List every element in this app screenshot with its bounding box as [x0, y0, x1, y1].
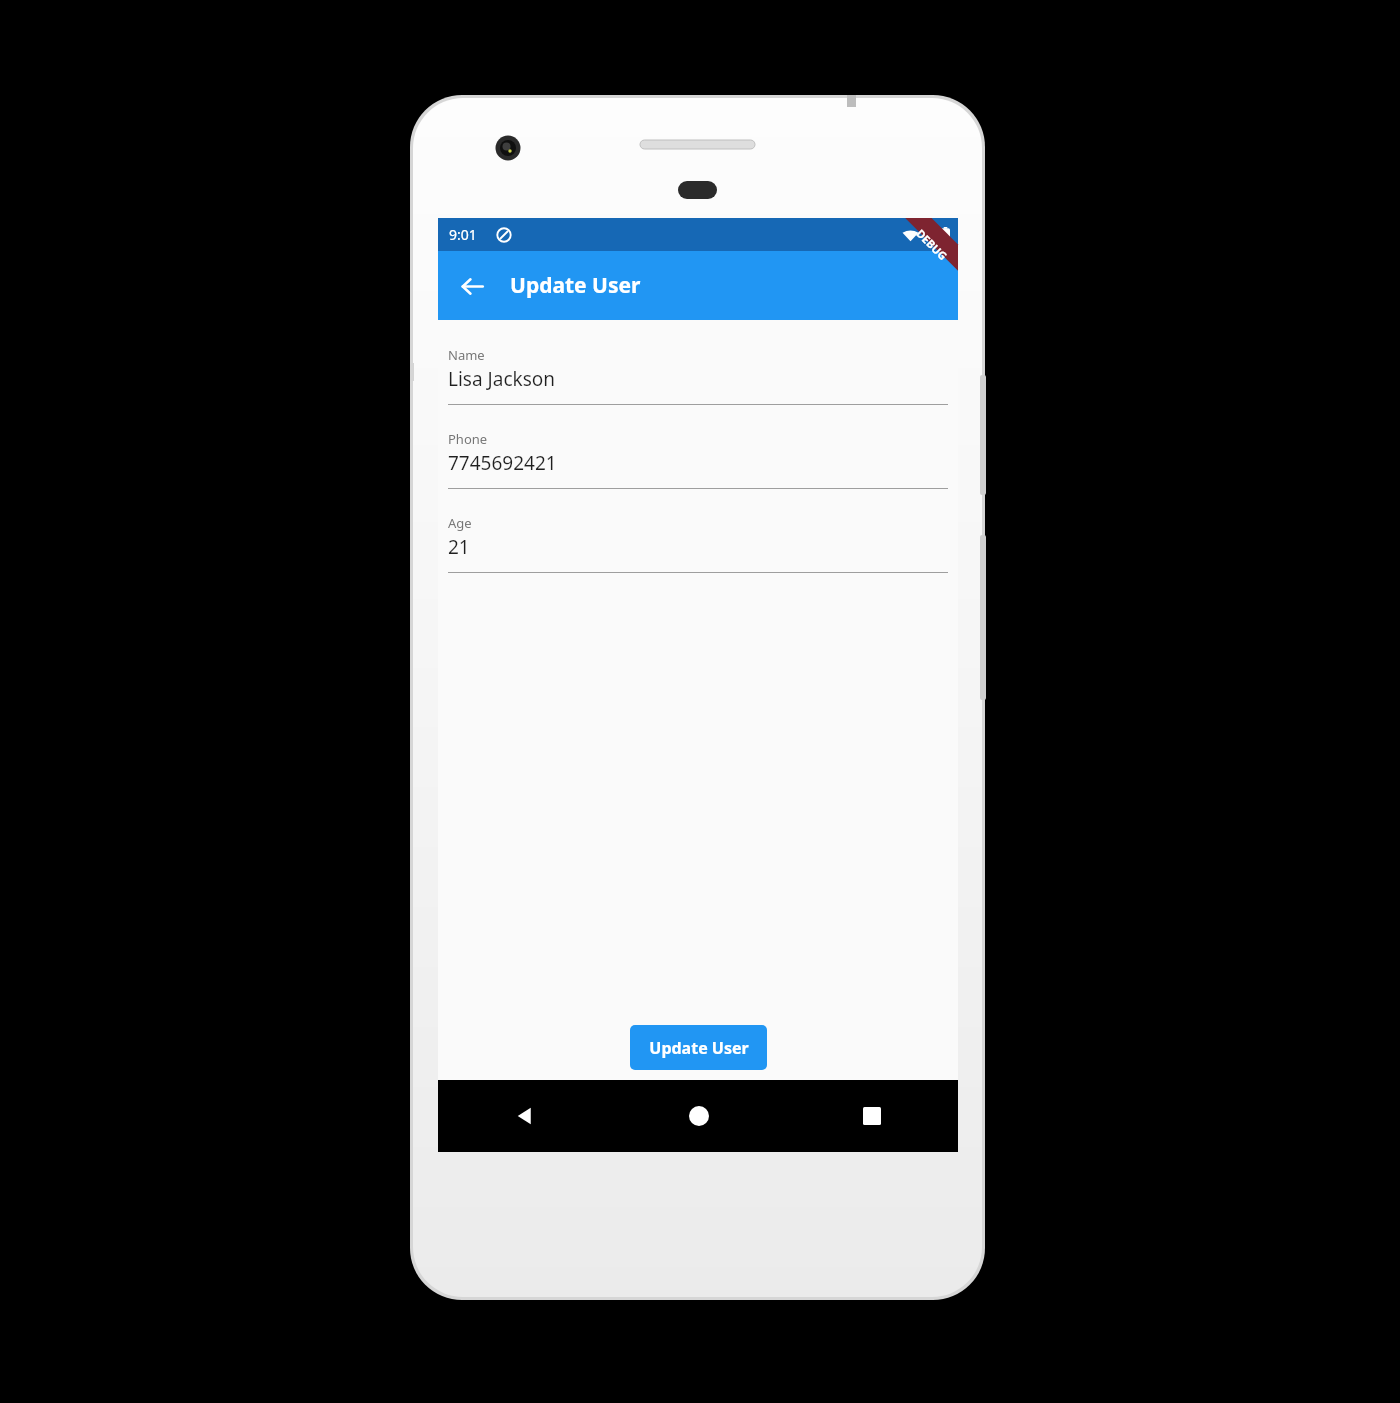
staticText: Name: [448, 346, 485, 364]
staticText: 7745692421: [448, 450, 557, 476]
staticText: Update User: [510, 271, 641, 300]
staticText: Lisa Jackson: [448, 366, 556, 392]
staticText: DEBUG: [913, 226, 951, 263]
button[interactable]: Name: [438, 320, 958, 405]
button[interactable]: Age: [438, 489, 958, 573]
button[interactable]: Phone: [438, 405, 958, 489]
staticText: 9:01: [449, 225, 477, 244]
staticText: Update User: [649, 1037, 749, 1059]
button[interactable]: Update User: [630, 1025, 767, 1070]
staticText: Age: [448, 514, 472, 532]
button[interactable]: Navigate up: [450, 264, 494, 308]
button[interactable]: Back: [438, 1080, 612, 1152]
staticText: 21: [448, 534, 470, 560]
button[interactable]: Home: [612, 1080, 785, 1152]
button[interactable]: Recent apps: [785, 1080, 958, 1152]
staticText: Phone: [448, 430, 488, 448]
